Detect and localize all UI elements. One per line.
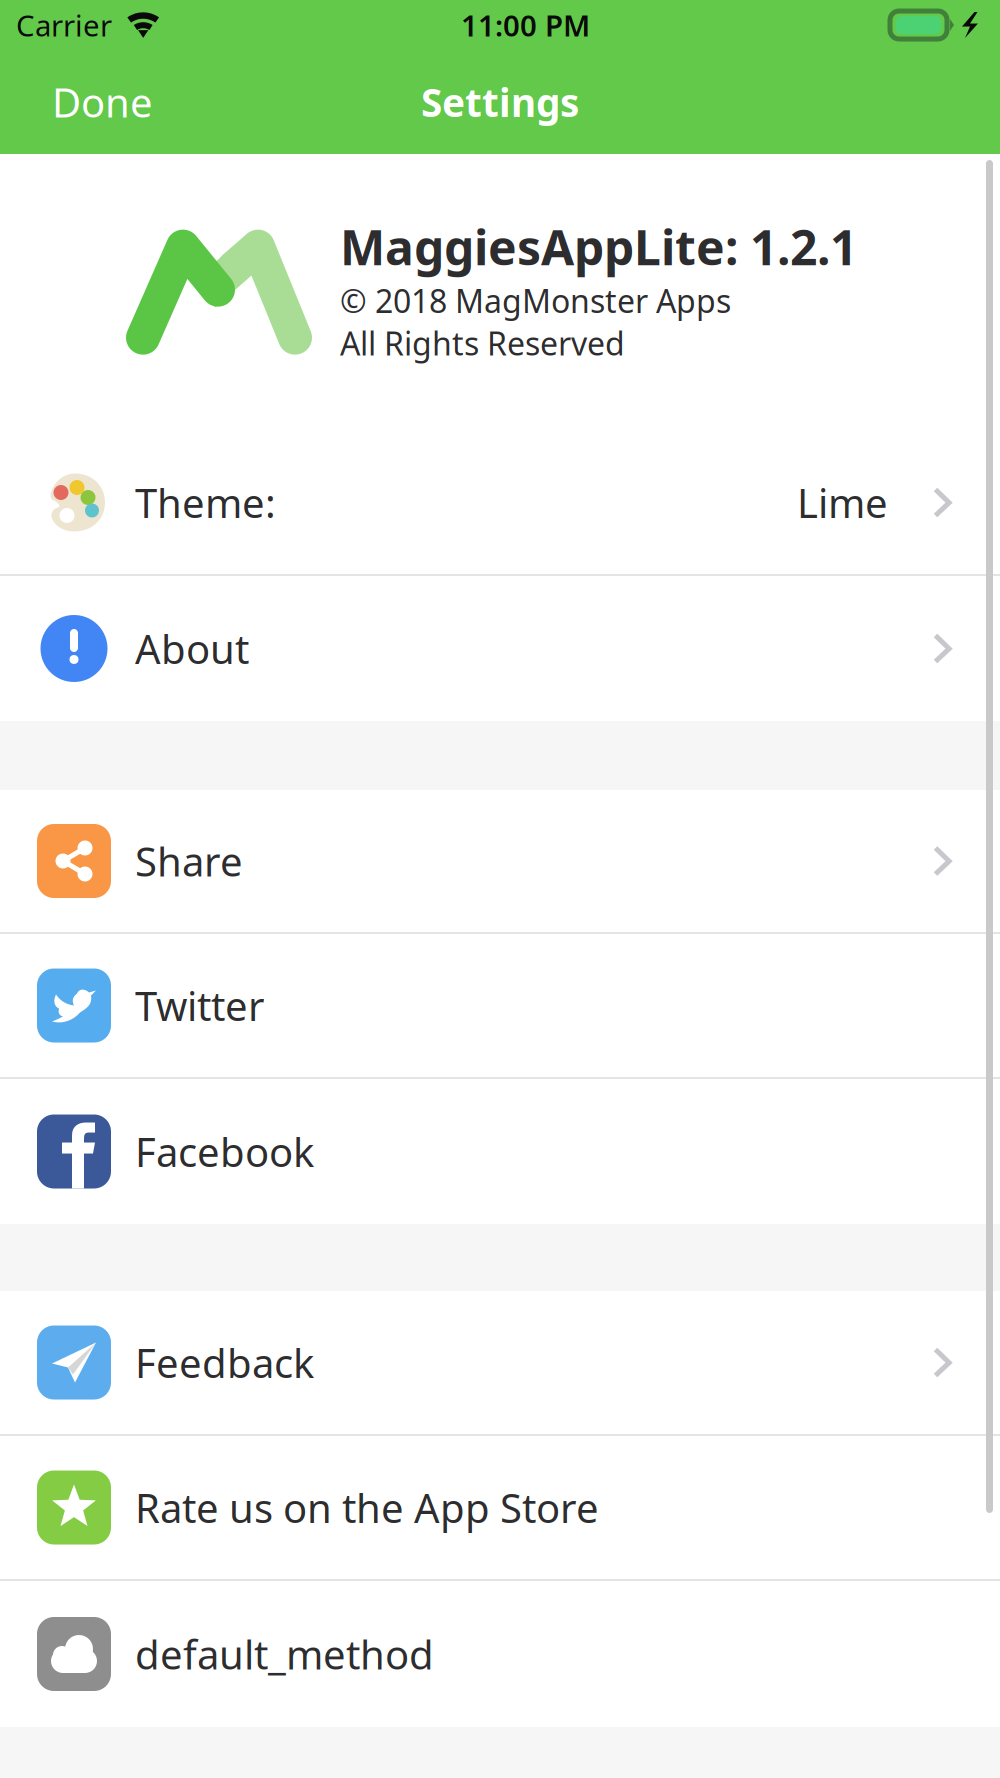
staticText: Facebook: [135, 1125, 314, 1178]
staticText: 11:00 PM: [461, 5, 590, 44]
button[interactable]: About: [0, 576, 1000, 721]
button[interactable]: Rate us on the App Store: [0, 1436, 1000, 1579]
staticText: All Rights Reserved: [340, 322, 625, 364]
staticText: default_method: [135, 1627, 434, 1680]
button[interactable]: default_method: [0, 1581, 1000, 1727]
button[interactable]: Feedback: [0, 1291, 1000, 1434]
button[interactable]: Facebook: [0, 1079, 1000, 1224]
button[interactable]: Twitter: [0, 934, 1000, 1077]
staticText: Feedback: [135, 1336, 314, 1389]
staticText: Lime: [797, 476, 888, 529]
staticText: Settings: [421, 76, 579, 128]
button[interactable]: Share: [0, 790, 1000, 932]
staticText: MaggiesAppLite: 1.2.1: [340, 215, 857, 278]
button[interactable]: Theme:: [0, 431, 1000, 574]
button[interactable]: Done: [0, 50, 179, 154]
staticText: Share: [135, 834, 243, 887]
staticText: Done: [52, 75, 153, 128]
staticText: About: [135, 622, 249, 675]
staticText: © 2018 MagMonster Apps: [340, 279, 731, 322]
staticText: Theme:: [135, 476, 276, 529]
staticText: Carrier: [16, 5, 112, 44]
staticText: Rate us on the App Store: [135, 1481, 599, 1534]
staticText: Twitter: [135, 979, 265, 1032]
